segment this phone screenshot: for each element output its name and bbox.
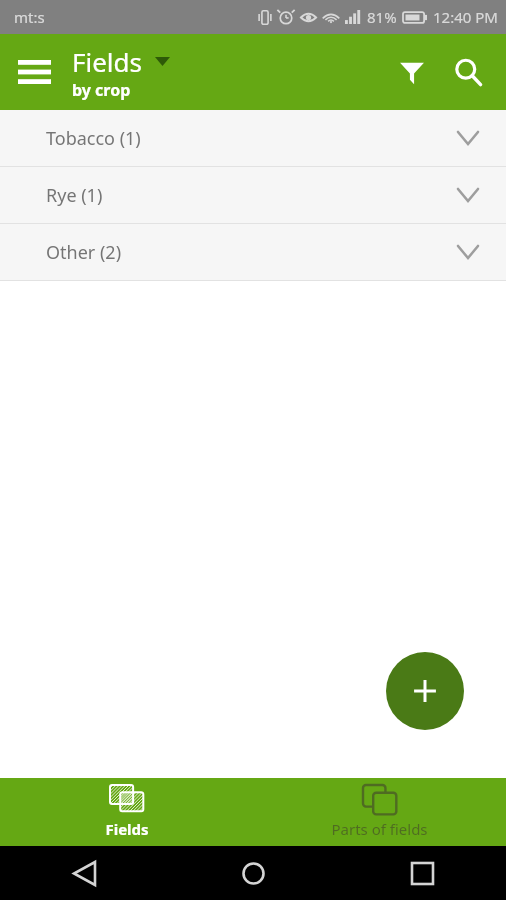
button[interactable]: Rye (1) bbox=[0, 167, 506, 223]
staticText: 81% bbox=[367, 7, 397, 27]
staticText: by crop bbox=[72, 79, 131, 101]
button[interactable]: Other (2) bbox=[0, 224, 506, 280]
button[interactable]: Parts of fields bbox=[253, 778, 506, 846]
staticText: Rye (1) bbox=[46, 183, 103, 208]
button[interactable]: Recent apps bbox=[400, 851, 444, 895]
staticText: Tobacco (1) bbox=[46, 126, 141, 151]
button[interactable]: Fields bbox=[72, 44, 170, 79]
button[interactable]: Back bbox=[62, 851, 106, 895]
button[interactable]: Filter bbox=[384, 44, 440, 100]
staticText: Fields bbox=[72, 44, 143, 79]
button[interactable]: Search bbox=[440, 44, 496, 100]
button[interactable]: Add field bbox=[386, 652, 464, 730]
button[interactable]: Open navigation menu bbox=[8, 46, 60, 98]
staticText: Parts of fields bbox=[331, 819, 428, 839]
button[interactable]: Tobacco (1) bbox=[0, 110, 506, 166]
staticText: Fields bbox=[105, 819, 149, 839]
button[interactable]: Fields bbox=[0, 778, 253, 846]
button[interactable]: Home bbox=[231, 851, 275, 895]
staticText: mt:s bbox=[14, 7, 45, 27]
staticText: 12:40 PM bbox=[433, 7, 498, 27]
staticText: Other (2) bbox=[46, 240, 122, 265]
